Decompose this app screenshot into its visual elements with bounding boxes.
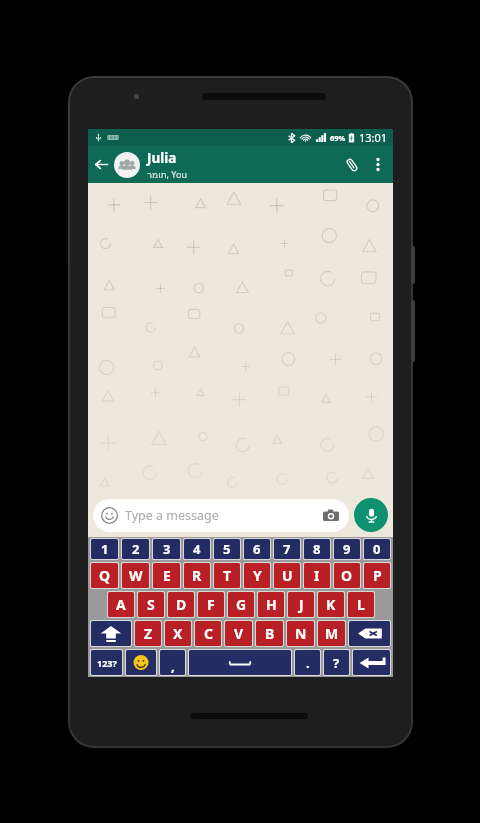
button[interactable]: P xyxy=(364,563,390,588)
button[interactable]: 3 xyxy=(153,539,180,559)
button[interactable]: 1 xyxy=(91,539,118,559)
staticText: V xyxy=(234,624,244,643)
button[interactable]: 5 xyxy=(214,539,240,559)
button[interactable]: 2 xyxy=(122,539,149,559)
button[interactable]: More options xyxy=(367,146,389,183)
staticText: P xyxy=(373,566,382,585)
button[interactable]: Y xyxy=(244,563,270,588)
button[interactable]: C xyxy=(195,621,221,646)
staticText: A xyxy=(116,595,126,614)
staticText: R xyxy=(192,566,202,585)
staticText: תומר, You xyxy=(147,168,187,180)
button[interactable]: T xyxy=(214,563,240,588)
button[interactable]: 8 xyxy=(304,539,330,559)
button[interactable]: Voice message xyxy=(354,498,388,532)
button[interactable]: Emoji xyxy=(126,650,156,675)
staticText: J xyxy=(299,595,304,614)
button[interactable]: 7 xyxy=(274,539,300,559)
button[interactable]: U xyxy=(274,563,300,588)
button[interactable]: 123? xyxy=(91,650,122,675)
staticText: O xyxy=(341,566,353,585)
button[interactable]: Shift xyxy=(91,621,131,646)
button[interactable]: H xyxy=(258,592,284,617)
button[interactable]: Backspace xyxy=(349,621,390,646)
button[interactable]: ? xyxy=(324,650,349,675)
staticText: Q xyxy=(99,566,111,585)
button[interactable]: W xyxy=(122,563,149,588)
staticText: 13:01 xyxy=(359,130,388,145)
button[interactable]: Back xyxy=(88,146,114,183)
staticText: W xyxy=(129,566,143,585)
button[interactable]: Attach xyxy=(337,146,367,183)
staticText: T xyxy=(223,566,232,585)
button[interactable]: I xyxy=(304,563,330,588)
button[interactable]: Julia xyxy=(147,149,337,180)
staticText: L xyxy=(357,595,365,614)
staticText: N xyxy=(295,624,307,643)
button[interactable]: K xyxy=(318,592,344,617)
button[interactable]: Camera xyxy=(321,506,341,526)
staticText: Julia xyxy=(147,149,177,167)
button[interactable]: E xyxy=(153,563,180,588)
staticText: 5 xyxy=(223,540,231,558)
staticText: U xyxy=(282,566,293,585)
staticText: 69% xyxy=(330,133,346,143)
button[interactable]: G xyxy=(228,592,254,617)
staticText: . xyxy=(306,654,310,672)
staticText: B xyxy=(265,624,275,643)
staticText: X xyxy=(173,624,183,643)
staticText: 0 xyxy=(373,540,381,558)
button[interactable]: 6 xyxy=(244,539,270,559)
staticText: ? xyxy=(333,654,340,672)
staticText: 9 xyxy=(343,540,351,558)
staticText: F xyxy=(207,595,215,614)
button[interactable]: S xyxy=(138,592,164,617)
staticText: S xyxy=(147,595,155,614)
staticText: 3 xyxy=(163,540,171,558)
staticText: 2 xyxy=(132,540,140,558)
button[interactable]: V xyxy=(225,621,252,646)
staticText: H xyxy=(266,595,277,614)
button[interactable]: Z xyxy=(135,621,161,646)
staticText: K xyxy=(326,595,336,614)
staticText: 6 xyxy=(253,540,261,558)
button[interactable]: Space xyxy=(189,650,291,675)
button[interactable]: Q xyxy=(91,563,118,588)
button[interactable]: 9 xyxy=(334,539,360,559)
staticText: 8 xyxy=(313,540,321,558)
button[interactable]: D xyxy=(168,592,194,617)
staticText: Y xyxy=(253,566,262,585)
staticText: I xyxy=(314,566,320,585)
button[interactable]: J xyxy=(288,592,314,617)
staticText: 1 xyxy=(101,540,109,558)
staticText: Type a message xyxy=(125,507,219,524)
staticText: , xyxy=(171,657,175,675)
button[interactable]: B xyxy=(256,621,283,646)
button[interactable]: Type a message xyxy=(93,499,349,532)
staticText: E xyxy=(163,566,171,585)
button[interactable]: R xyxy=(184,563,210,588)
button[interactable]: X xyxy=(165,621,191,646)
staticText: G xyxy=(236,595,247,614)
button[interactable]: . xyxy=(295,650,320,675)
button[interactable]: N xyxy=(287,621,314,646)
button[interactable]: O xyxy=(334,563,360,588)
button[interactable]: Group photo xyxy=(114,152,140,178)
button[interactable]: A xyxy=(108,592,134,617)
staticText: Z xyxy=(144,624,153,643)
button[interactable]: M xyxy=(318,621,345,646)
button[interactable]: F xyxy=(198,592,224,617)
button[interactable]: L xyxy=(348,592,374,617)
staticText: 123? xyxy=(97,657,117,669)
staticText: D xyxy=(176,595,187,614)
button[interactable]: Enter xyxy=(353,650,390,675)
staticText: C xyxy=(204,624,213,643)
staticText: M xyxy=(325,624,339,643)
button[interactable]: 0 xyxy=(364,539,390,559)
staticText: 4 xyxy=(193,540,201,558)
button[interactable]: , xyxy=(160,650,185,675)
button[interactable]: 4 xyxy=(184,539,210,559)
staticText: 7 xyxy=(283,540,291,558)
